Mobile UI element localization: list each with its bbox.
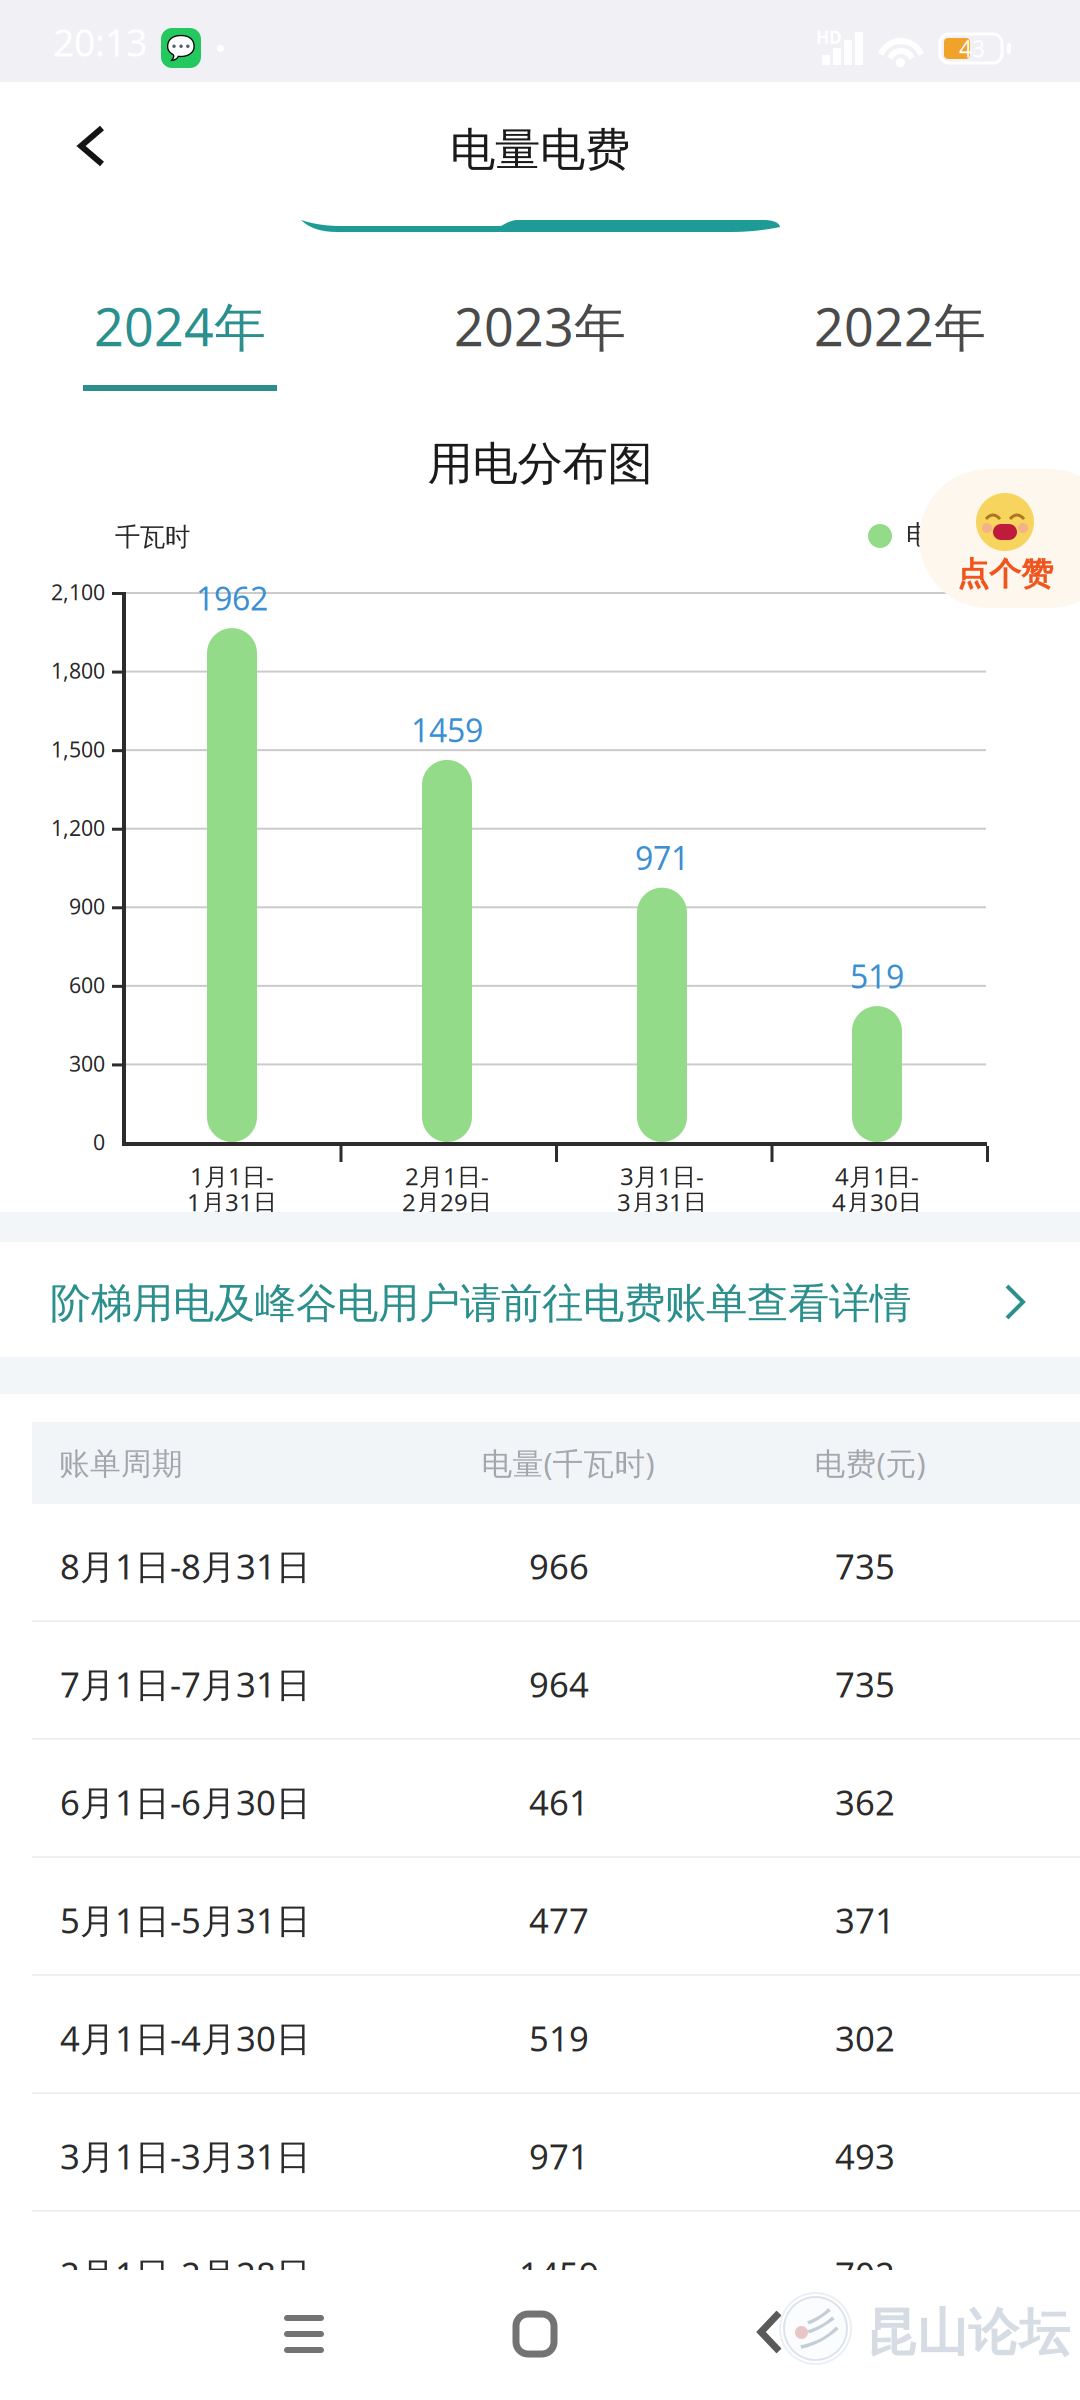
button[interactable]: 2月1日-2月28日: [0, 2212, 1080, 2330]
staticText: 3月1日-3月31日: [60, 2132, 311, 2180]
staticText: 电量: [906, 518, 960, 552]
staticText: 1,800: [51, 656, 105, 685]
staticText: 账单周期: [59, 1445, 183, 1483]
button[interactable]: 2024年: [0, 244, 360, 392]
button[interactable]: 最近任务: [243, 2270, 363, 2400]
staticText: 2月1日-2月28日: [60, 2250, 311, 2298]
staticText: 2024年: [94, 291, 266, 361]
button[interactable]: 2023年: [360, 244, 720, 392]
staticText: 1月1日-: [190, 1160, 274, 1192]
staticText: 43: [959, 33, 985, 64]
button[interactable]: 返回: [0, 82, 110, 202]
button[interactable]: 4月1日-4月30日: [0, 1976, 1080, 2094]
button[interactable]: 6月1日-6月30日: [0, 1740, 1080, 1858]
staticText: 2月1日-: [405, 1160, 489, 1192]
staticText: 300: [69, 1049, 105, 1078]
staticText: 电费(元): [814, 1442, 925, 1484]
staticText: 519: [850, 954, 904, 998]
button[interactable]: 8月1日-8月31日: [0, 1504, 1080, 1622]
staticText: 点个赞: [957, 554, 1053, 594]
button[interactable]: 阶梯用电及峰谷电用户请前往电费账单查看详情: [0, 1242, 1080, 1357]
staticText: 电量电费: [450, 121, 630, 178]
staticText: 971: [635, 836, 689, 879]
staticText: HD: [816, 25, 842, 49]
staticText: 4月30日: [832, 1186, 922, 1218]
staticText: 1,500: [51, 735, 105, 764]
staticText: 1459: [519, 2250, 599, 2298]
staticText: 964: [529, 1660, 589, 1708]
staticText: 6月1日-6月30日: [60, 1778, 311, 1826]
staticText: 电量(千瓦时): [481, 1442, 654, 1484]
staticText: 5月1日-5月31日: [60, 1896, 311, 1944]
staticText: 0: [93, 1127, 105, 1157]
staticText: 900: [69, 892, 105, 921]
staticText: 千瓦时: [115, 521, 190, 553]
staticText: 7月1日-7月31日: [60, 1660, 311, 1708]
staticText: 371: [835, 1896, 895, 1944]
staticText: 1月31日: [187, 1186, 277, 1218]
staticText: 600: [69, 970, 105, 999]
staticText: 2022年: [814, 291, 986, 361]
staticText: 8月1日-8月31日: [60, 1542, 311, 1590]
staticText: 735: [835, 1542, 895, 1590]
staticText: 3月1日-: [620, 1160, 704, 1192]
staticText: 966: [529, 1542, 589, 1590]
staticText: 362: [835, 1778, 895, 1826]
staticText: 1459: [411, 708, 483, 752]
staticText: 1962: [196, 576, 268, 620]
staticText: 阶梯用电及峰谷电用户请前往电费账单查看详情: [50, 1277, 911, 1330]
staticText: 735: [835, 1660, 895, 1708]
staticText: 4月1日-: [835, 1160, 919, 1192]
staticText: 昆山论坛: [866, 2301, 1070, 2365]
staticText: 477: [529, 1896, 589, 1944]
staticText: 用电分布图: [427, 435, 652, 492]
staticText: 519: [529, 2014, 589, 2062]
staticText: 彡: [799, 2302, 840, 2355]
staticText: 702: [835, 2250, 895, 2298]
staticText: 2,100: [51, 577, 105, 607]
staticText: 2023年: [454, 291, 626, 361]
button[interactable]: 5月1日-5月31日: [0, 1858, 1080, 1976]
staticText: 1,200: [51, 813, 105, 842]
staticText: 20:13: [53, 17, 147, 67]
button[interactable]: 主页: [475, 2270, 595, 2400]
staticText: 💬: [166, 34, 196, 62]
button[interactable]: 7月1日-7月31日: [0, 1622, 1080, 1740]
staticText: 971: [529, 2132, 589, 2180]
staticText: 302: [835, 2014, 895, 2062]
staticText: 4月1日-4月30日: [60, 2014, 311, 2062]
button[interactable]: 2022年: [720, 244, 1080, 392]
button[interactable]: 3月1日-3月31日: [0, 2094, 1080, 2212]
staticText: 493: [835, 2132, 895, 2180]
staticText: 3月31日: [617, 1186, 707, 1218]
button[interactable]: 点个赞: [919, 469, 1080, 608]
button[interactable]: 返回: [752, 2270, 842, 2400]
staticText: 461: [529, 1778, 589, 1826]
staticText: 2月29日: [402, 1186, 492, 1218]
